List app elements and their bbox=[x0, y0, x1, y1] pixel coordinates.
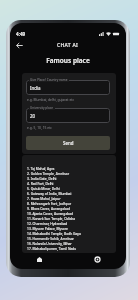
button[interactable]: Send bbox=[26, 136, 110, 150]
button[interactable]: 13. Mysore Palace, Mysore bbox=[27, 225, 116, 230]
button[interactable] bbox=[26, 80, 110, 95]
button[interactable]: 12. Charminar, Hyderabad bbox=[27, 220, 116, 225]
staticText: 5. Qutub Minar, Delhi bbox=[27, 186, 60, 190]
staticText: e.g. Mumbai, delhi, gujarat etc bbox=[27, 97, 75, 101]
staticText: 16. Nalanda University, Bihar bbox=[27, 241, 72, 245]
staticText: University place bbox=[30, 106, 54, 110]
button[interactable]: 8. Mehrangarh Fort, Jodhpur bbox=[27, 200, 116, 205]
button[interactable]: 7. Hawa Mahal, Jaipur bbox=[27, 195, 116, 200]
staticText: 17. Mahabalipuram, Tamil Nadu bbox=[27, 246, 77, 250]
staticText: Send bbox=[63, 140, 74, 146]
staticText: Famous place bbox=[10, 56, 126, 65]
button[interactable]: 6. Gateway of India, Mumbai bbox=[27, 190, 116, 195]
staticText: 2. Golden Temple, Amritsar bbox=[27, 171, 70, 175]
staticText: Give Place/ Country name bbox=[30, 78, 68, 82]
button[interactable]: 14. Mahabodhi Temple, Bodh Gaya bbox=[27, 230, 116, 235]
button[interactable]: 4. Red Fort, Delhi bbox=[27, 180, 116, 185]
button[interactable] bbox=[26, 108, 110, 123]
button[interactable]: Back bbox=[13, 39, 25, 51]
button[interactable]: 9. Ellora Caves, Aurangabad bbox=[27, 205, 116, 210]
button[interactable]: 11. Konark Sun Temple, Odisha bbox=[27, 215, 116, 220]
staticText: 4:49 bbox=[16, 31, 26, 37]
staticText: India bbox=[30, 85, 41, 91]
staticText: 8. Mehrangarh Fort, Jodhpur bbox=[27, 201, 72, 205]
staticText: 14. Mahabodhi Temple, Bodh Gaya bbox=[27, 231, 81, 235]
staticText: 4. Red Fort, Delhi bbox=[27, 181, 54, 185]
staticText: 15. Harmandir Sahib, Amritsar bbox=[27, 236, 74, 240]
button[interactable]: 17. Mahabalipuram, Tamil Nadu bbox=[27, 245, 116, 250]
staticText: 1. Taj Mahal, Agra bbox=[27, 166, 55, 170]
button[interactable]: 1. Taj Mahal, Agra bbox=[27, 165, 116, 170]
staticText: 6. Gateway of India, Mumbai bbox=[27, 191, 72, 195]
staticText: 10. Ajanta Caves, Aurangabad bbox=[27, 211, 74, 215]
staticText: CHAT AI bbox=[57, 42, 79, 49]
staticText: 3. India Gate, Delhi bbox=[27, 176, 57, 180]
staticText: 12. Charminar, Hyderabad bbox=[27, 221, 68, 225]
button[interactable]: Home bbox=[10, 251, 68, 268]
button[interactable]: Account bbox=[68, 251, 126, 268]
button[interactable]: 16. Nalanda University, Bihar bbox=[27, 240, 116, 245]
button[interactable]: 15. Harmandir Sahib, Amritsar bbox=[27, 235, 116, 240]
button[interactable]: 5. Qutub Minar, Delhi bbox=[27, 185, 116, 190]
staticText: 20 bbox=[30, 113, 36, 119]
button[interactable]: 2. Golden Temple, Amritsar bbox=[27, 170, 116, 175]
button[interactable]: 10. Ajanta Caves, Aurangabad bbox=[27, 210, 116, 215]
staticText: 9. Ellora Caves, Aurangabad bbox=[27, 206, 71, 210]
staticText: e.g. 5, 10, 15 etc bbox=[27, 125, 52, 129]
button[interactable]: 3. India Gate, Delhi bbox=[27, 175, 116, 180]
staticText: 13. Mysore Palace, Mysore bbox=[27, 226, 68, 230]
staticText: 7. Hawa Mahal, Jaipur bbox=[27, 196, 61, 200]
staticText: 11. Konark Sun Temple, Odisha bbox=[27, 216, 76, 220]
